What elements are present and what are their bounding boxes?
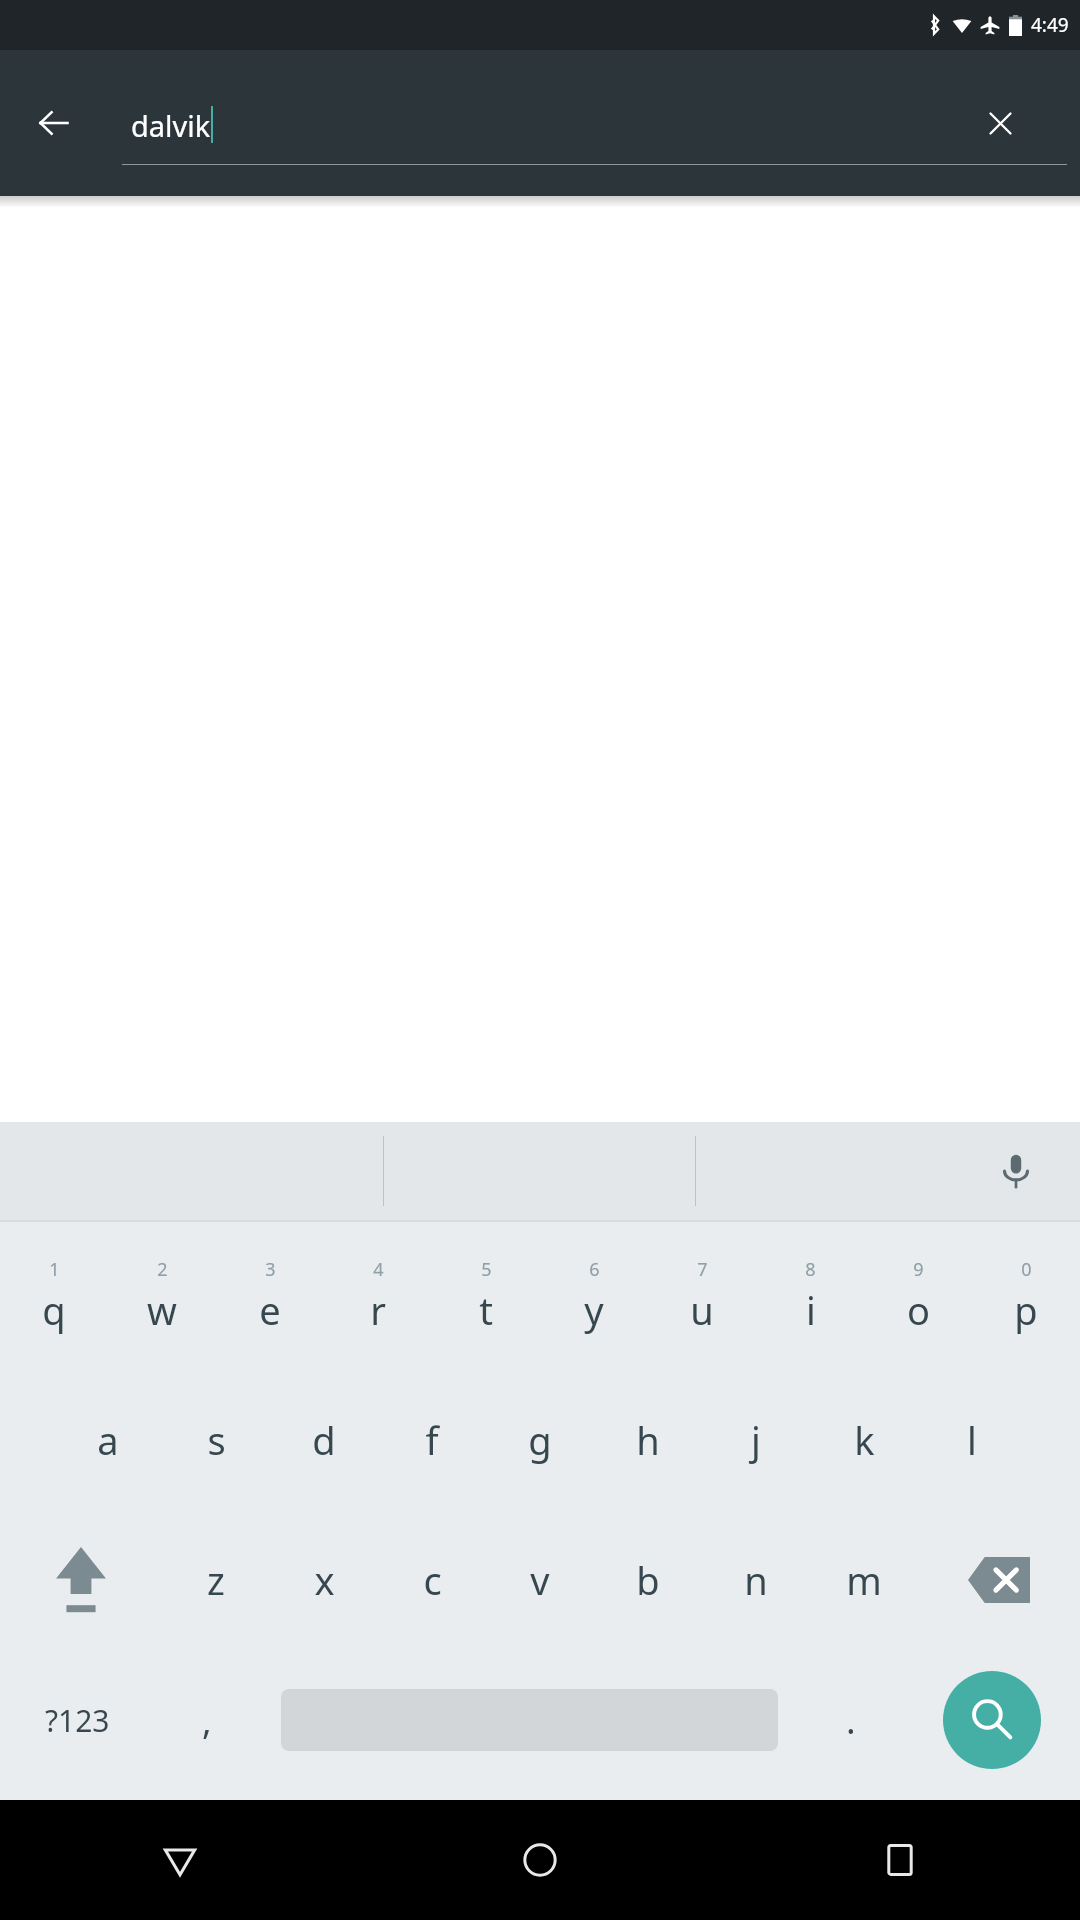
staticText: b [636, 1554, 660, 1606]
button[interactable]: Backspace [918, 1510, 1080, 1650]
button[interactable]: j [702, 1370, 810, 1510]
button[interactable]: ?123 [0, 1650, 155, 1790]
button[interactable]: 2 [108, 1222, 216, 1370]
button[interactable]: Back [26, 95, 82, 151]
button[interactable]: k [810, 1370, 918, 1510]
button[interactable]: Home [360, 1800, 720, 1920]
button[interactable]: Clear [972, 95, 1028, 151]
staticText: j [751, 1414, 761, 1466]
staticText: 6 [589, 1257, 600, 1282]
staticText: u [690, 1284, 714, 1336]
button[interactable]: g [486, 1370, 594, 1510]
staticText: 3 [265, 1257, 276, 1282]
staticText: 4 [373, 1257, 384, 1282]
staticText: 0 [1021, 1257, 1032, 1282]
button[interactable]: , [155, 1650, 259, 1790]
button[interactable]: 5 [432, 1222, 540, 1370]
button[interactable]: x [270, 1510, 378, 1650]
button[interactable]: 1 [0, 1222, 108, 1370]
staticText: o [907, 1284, 930, 1336]
staticText: r [370, 1284, 386, 1336]
button[interactable]: z [162, 1510, 270, 1650]
button[interactable]: 9 [864, 1222, 972, 1370]
staticText: 9 [913, 1257, 924, 1282]
button[interactable]: 6 [540, 1222, 648, 1370]
staticText: a [97, 1414, 119, 1466]
button[interactable]: Space [259, 1650, 799, 1790]
button[interactable]: h [594, 1370, 702, 1510]
button[interactable]: 3 [216, 1222, 324, 1370]
button[interactable]: m [810, 1510, 918, 1650]
staticText: 7 [697, 1257, 708, 1282]
button[interactable]: c [378, 1510, 486, 1650]
button[interactable]: f [378, 1370, 486, 1510]
staticText: w [147, 1284, 177, 1336]
staticText: m [846, 1554, 882, 1606]
staticText: x [314, 1554, 335, 1606]
button[interactable]: . [799, 1650, 903, 1790]
button[interactable]: 0 [972, 1222, 1080, 1370]
staticText: d [312, 1414, 336, 1466]
staticText: 4:49 [1031, 12, 1069, 38]
button[interactable]: Shift [0, 1510, 162, 1650]
button[interactable]: 7 [648, 1222, 756, 1370]
staticText: t [479, 1284, 493, 1336]
staticText: ?123 [45, 1700, 110, 1741]
staticText: 2 [157, 1257, 168, 1282]
staticText: c [423, 1554, 442, 1606]
button[interactable]: Search [903, 1650, 1080, 1790]
staticText: , [202, 1696, 212, 1745]
button[interactable]: Recents [720, 1800, 1080, 1920]
button[interactable]: b [594, 1510, 702, 1650]
staticText: h [636, 1414, 660, 1466]
staticText: l [967, 1414, 977, 1466]
staticText: n [744, 1554, 768, 1606]
button[interactable]: Voice input [980, 1135, 1052, 1207]
button[interactable]: l [918, 1370, 1026, 1510]
button[interactable]: n [702, 1510, 810, 1650]
button[interactable]: d [270, 1370, 378, 1510]
button[interactable]: a [54, 1370, 162, 1510]
button[interactable]: 4 [324, 1222, 432, 1370]
staticText: f [425, 1414, 439, 1466]
staticText: g [528, 1414, 552, 1466]
staticText: y [584, 1284, 604, 1336]
staticText: v [530, 1554, 550, 1606]
button[interactable]: Back [0, 1800, 360, 1920]
staticText: s [207, 1414, 226, 1466]
staticText: 1 [49, 1257, 60, 1282]
staticText: k [854, 1414, 875, 1466]
staticText: 5 [481, 1257, 492, 1282]
staticText: e [259, 1284, 281, 1336]
button[interactable]: 8 [756, 1222, 864, 1370]
staticText: p [1014, 1284, 1038, 1336]
staticText: z [207, 1554, 225, 1606]
staticText: 8 [805, 1257, 816, 1282]
staticText: . [846, 1696, 856, 1745]
button[interactable]: s [162, 1370, 270, 1510]
staticText: q [42, 1284, 66, 1336]
button[interactable]: v [486, 1510, 594, 1650]
staticText: dalvik [131, 106, 211, 145]
staticText: i [806, 1284, 816, 1336]
